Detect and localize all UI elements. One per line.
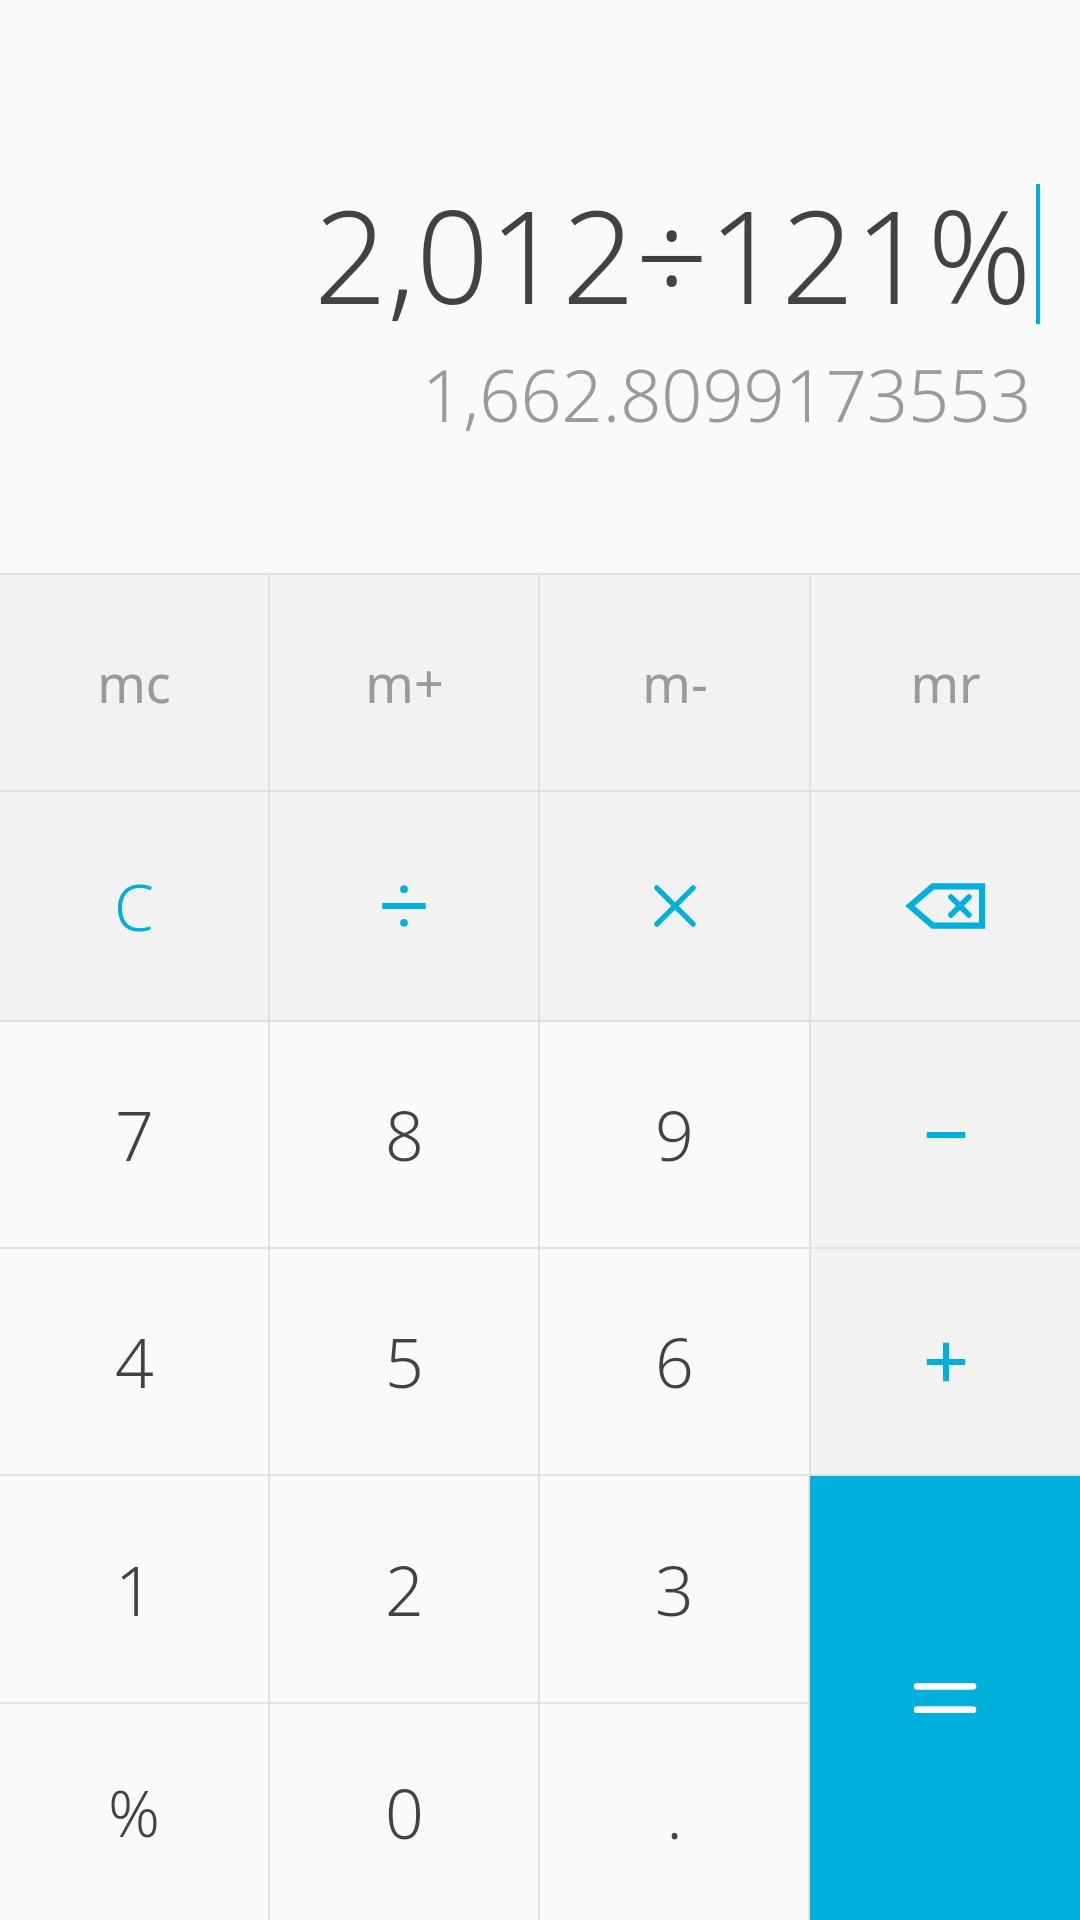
button[interactable]: mc [0, 575, 268, 790]
staticText: 6 [655, 1315, 694, 1408]
button[interactable]: 6 [540, 1249, 809, 1474]
button[interactable]: m- [540, 575, 809, 790]
button[interactable]: 1 [0, 1476, 268, 1702]
button[interactable]: 8 [270, 1022, 538, 1247]
button[interactable]: 2 [270, 1476, 538, 1702]
button[interactable]: mr [811, 575, 1080, 790]
staticText: mr [910, 647, 981, 718]
button[interactable]: m+ [270, 575, 538, 790]
staticText: 4 [115, 1315, 154, 1408]
staticText: 0 [385, 1766, 424, 1859]
button[interactable]: Plus [811, 1249, 1080, 1474]
staticText: 8 [385, 1088, 424, 1181]
button[interactable]: . [540, 1704, 808, 1920]
staticText: mc [97, 647, 171, 718]
staticText: 2,012÷121% [314, 167, 1032, 341]
staticText: 1,662.8099173553 [422, 345, 1032, 443]
staticText: m+ [365, 647, 444, 718]
button[interactable]: 9 [540, 1022, 809, 1247]
button[interactable]: 5 [270, 1249, 538, 1474]
staticText: 7 [115, 1088, 154, 1181]
staticText: 2 [385, 1543, 424, 1636]
button[interactable]: 4 [0, 1249, 268, 1474]
button[interactable]: Clear [0, 792, 268, 1020]
staticText: 9 [655, 1088, 694, 1181]
staticText: 3 [655, 1543, 694, 1636]
staticText: 1 [115, 1543, 154, 1636]
button[interactable]: Divide [270, 792, 538, 1020]
button[interactable]: Equals [810, 1476, 1080, 1920]
staticText: % [108, 1769, 160, 1856]
button[interactable]: % [0, 1704, 268, 1920]
staticText: . [666, 1766, 683, 1859]
button[interactable]: 3 [540, 1476, 808, 1702]
staticText: m- [642, 647, 708, 718]
staticText: 5 [385, 1315, 424, 1408]
button[interactable]: 7 [0, 1022, 268, 1247]
staticText: C [114, 863, 154, 950]
button[interactable]: Minus [811, 1022, 1080, 1247]
button[interactable]: Backspace [811, 792, 1080, 1020]
button[interactable]: Multiply [540, 792, 809, 1020]
button[interactable]: 0 [270, 1704, 538, 1920]
